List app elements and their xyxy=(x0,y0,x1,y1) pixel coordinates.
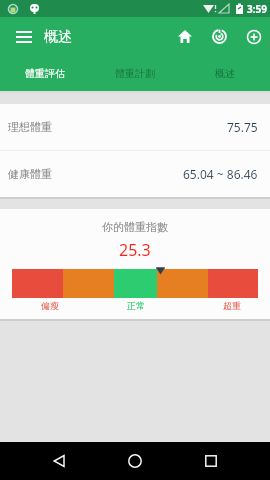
staticText: 25.3 xyxy=(119,239,151,261)
button[interactable]: 理想體重 xyxy=(0,104,270,150)
staticText: 3:59 xyxy=(247,2,267,16)
staticText: 正常 xyxy=(127,300,145,311)
button[interactable]: 健康體重 xyxy=(0,151,270,197)
button[interactable] xyxy=(128,454,142,468)
staticText: 理想體重 xyxy=(8,120,52,134)
staticText: 65.04 ~ 86.46 xyxy=(183,166,258,182)
staticText: 健康體重 xyxy=(8,167,52,181)
button[interactable]: 概述 xyxy=(180,56,270,91)
button[interactable] xyxy=(52,454,66,468)
button[interactable] xyxy=(167,17,202,56)
button[interactable]: 體重評估 xyxy=(0,56,90,91)
button[interactable] xyxy=(11,24,37,50)
button[interactable] xyxy=(237,17,270,56)
button[interactable]: 體重計劃 xyxy=(90,56,180,91)
button[interactable] xyxy=(204,454,218,468)
staticText: 概述 xyxy=(215,67,235,80)
staticText: 體重評估 xyxy=(25,67,65,80)
staticText: 你的體重指數 xyxy=(102,220,168,234)
staticText: 偏瘦 xyxy=(41,300,59,311)
staticText: 75.75 xyxy=(227,119,258,135)
staticText: 超重 xyxy=(223,300,241,311)
staticText: 體重計劃 xyxy=(115,67,155,80)
button[interactable] xyxy=(202,17,237,56)
staticText: 概述 xyxy=(44,28,72,46)
